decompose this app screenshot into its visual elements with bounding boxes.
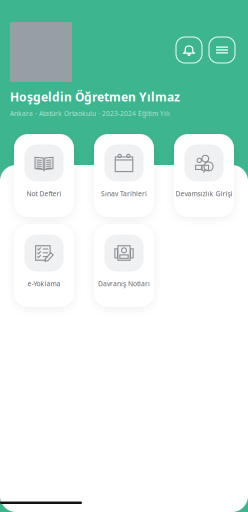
button[interactable]: Davranış Notları — [94, 224, 154, 307]
staticText: Not Defteri — [26, 189, 61, 198]
button[interactable]: Menü — [209, 37, 235, 63]
button[interactable]: Sınav Tarihleri — [94, 134, 154, 217]
button[interactable]: Bildirimler — [176, 37, 202, 63]
button[interactable]: Devamsızlık Girişi — [174, 134, 234, 217]
button[interactable]: Not Defteri — [14, 134, 74, 217]
staticText: Devamsızlık Girişi — [175, 189, 232, 198]
staticText: Ankara · Atatürk Ortaokulu · 2023-2024 E… — [10, 109, 170, 118]
staticText: Davranış Notları — [98, 279, 150, 288]
staticText: Hoşgeldin Öğretmen Yılmaz — [10, 89, 180, 105]
button[interactable]: e-Yoklama — [14, 224, 74, 307]
staticText: Sınav Tarihleri — [101, 189, 147, 198]
staticText: e-Yoklama — [27, 279, 60, 288]
